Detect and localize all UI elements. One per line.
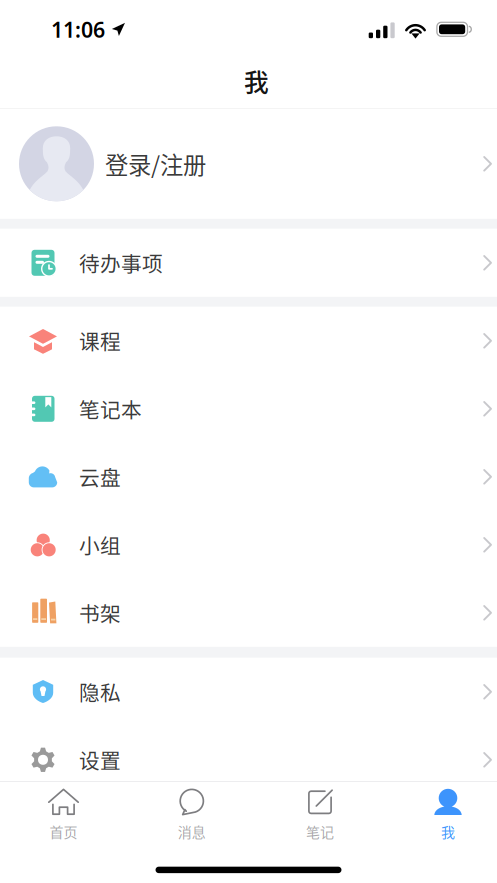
staticText: 消息 [178,821,206,841]
button[interactable]: 隐私 [0,658,497,726]
staticText: 云盘 [79,462,121,492]
button[interactable]: 首页 [4,782,122,846]
staticText: 小组 [79,530,121,560]
button[interactable]: 小组 [0,511,497,579]
button[interactable]: 书架 [0,579,497,647]
staticText: 11:06 [51,15,105,44]
button[interactable]: 云盘 [0,443,497,511]
button[interactable]: 课程 [0,307,497,375]
staticText: 首页 [49,821,77,841]
button[interactable]: 登录/注册 [0,109,497,219]
staticText: 设置 [79,745,121,775]
staticText: 笔记本 [79,394,142,424]
staticText: 待办事项 [79,248,163,278]
staticText: 书架 [79,598,121,628]
button[interactable]: 我 [389,782,497,846]
button[interactable]: 待办事项 [0,229,497,297]
staticText: 我 [244,63,269,99]
button[interactable]: 设置 [0,726,497,794]
staticText: 我 [441,821,455,841]
staticText: 笔记 [306,821,334,841]
staticText: 隐私 [79,677,121,707]
button[interactable]: 笔记本 [0,375,497,443]
staticText: 登录/注册 [105,147,206,181]
button[interactable]: 笔记 [261,782,379,846]
button[interactable]: 消息 [133,782,251,846]
staticText: 课程 [79,326,121,356]
